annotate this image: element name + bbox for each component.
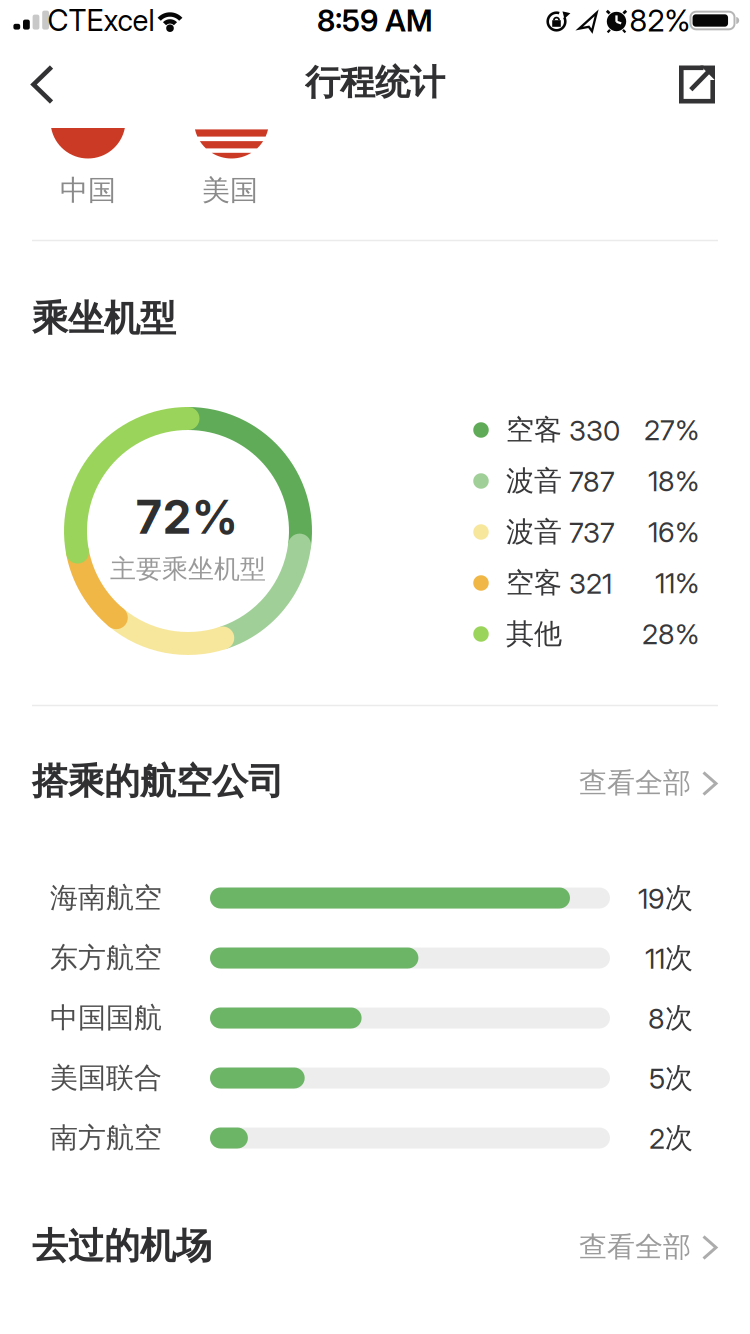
staticText: 8:59 AM [317,3,433,38]
staticText: 中国 [60,173,116,208]
button[interactable]: 查看全部 [546,1222,722,1272]
button[interactable]: Back [7,49,77,119]
staticText: 查看全部 [579,1230,691,1264]
staticText: 82% [629,3,690,38]
staticText: 其他 [506,617,562,651]
button[interactable]: Share [662,48,732,118]
staticText: 主要乘坐机型 [110,553,266,585]
staticText: 19次 [638,881,693,915]
staticText: 27% [644,413,699,446]
staticText: 去过的机场 [32,1224,212,1268]
staticText: 乘坐机型 [32,296,176,341]
staticText: 查看全部 [579,766,691,800]
staticText: 美国联合 [50,1061,162,1095]
staticText: 8次 [648,1001,693,1035]
staticText: 28% [642,617,699,650]
staticText: 2次 [649,1121,693,1155]
staticText: 中国国航 [50,1001,162,1035]
staticText: 11次 [645,941,693,975]
staticText: 东方航空 [50,941,162,975]
staticText: 搭乘的航空公司 [32,759,284,804]
button[interactable]: 查看全部 [546,758,722,808]
staticText: 5次 [649,1061,693,1095]
staticText: 空客 330 [506,413,620,447]
staticText: 空客 321 [506,566,612,600]
staticText: 南方航空 [50,1121,162,1155]
staticText: 11% [655,566,699,599]
staticText: 16% [648,515,699,548]
staticText: 72% [135,490,238,544]
staticText: 海南航空 [50,881,162,915]
staticText: 波音 737 [506,515,615,549]
staticText: 美国 [202,173,258,208]
staticText: 行程统计 [305,61,445,104]
staticText: 波音 787 [506,464,615,498]
staticText: CTExcel [47,3,154,38]
staticText: 18% [648,464,699,497]
